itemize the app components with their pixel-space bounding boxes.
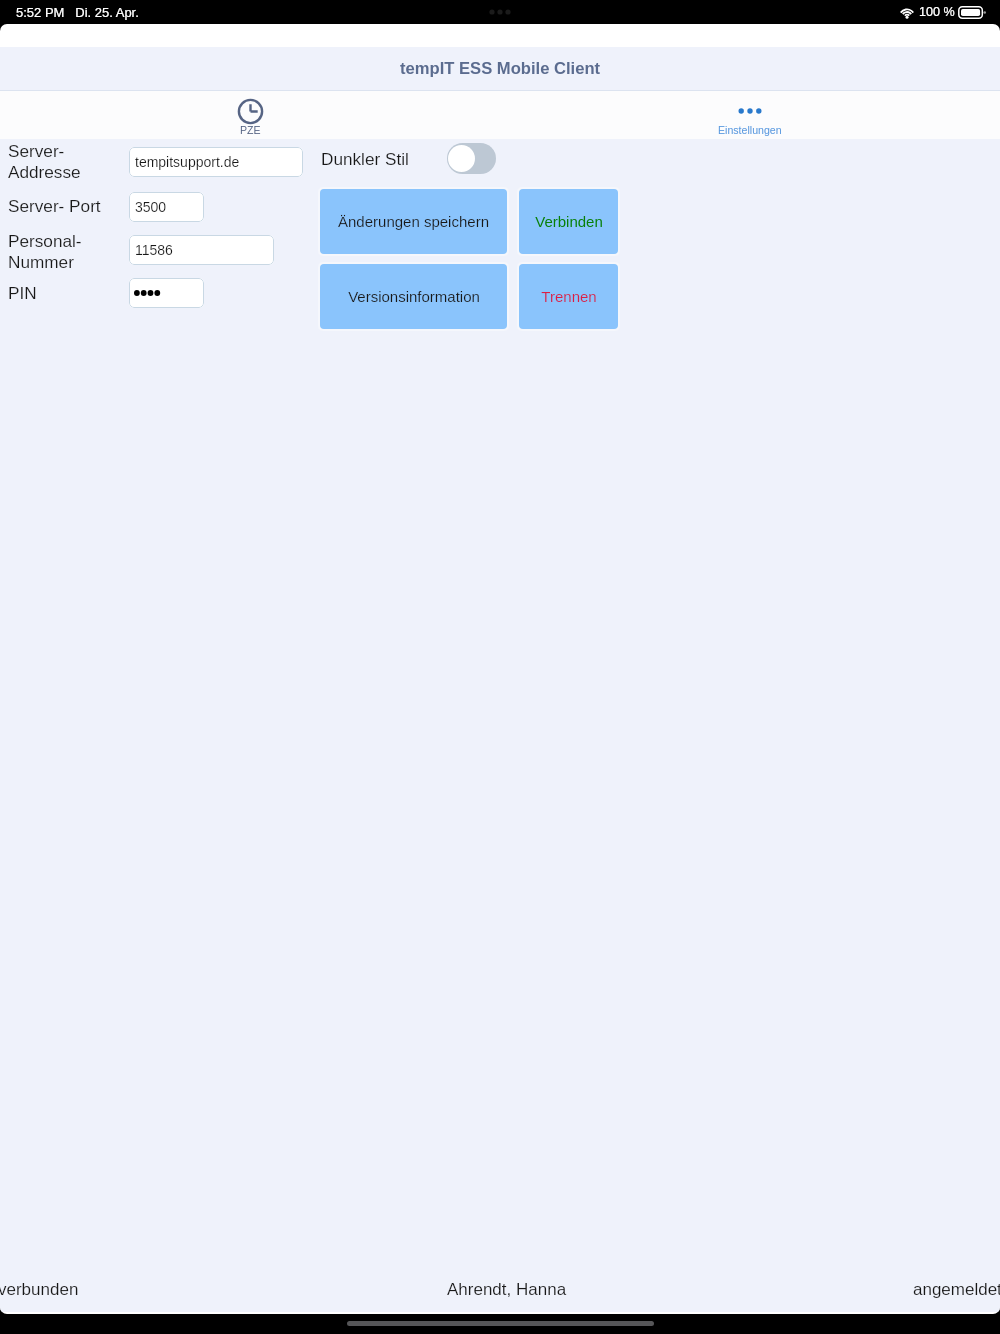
- button[interactable]: Änderungen speichern: [320, 189, 507, 254]
- button[interactable]: Trennen: [519, 264, 618, 329]
- button[interactable]: PZE: [0, 91, 500, 139]
- staticText: Änderungen speichern: [338, 213, 489, 230]
- staticText: Trennen: [541, 288, 597, 305]
- staticText: tempIT ESS Mobile Client: [400, 59, 601, 78]
- staticText: Server- Addresse: [8, 141, 81, 182]
- button[interactable]: tempitsupport.de: [129, 147, 303, 177]
- button[interactable]: Versionsinformation: [320, 264, 507, 329]
- button[interactable]: [129, 278, 204, 308]
- staticText: Verbinden: [535, 213, 603, 230]
- staticText: 11586: [135, 242, 173, 258]
- staticText: PZE: [240, 124, 261, 136]
- staticText: 5:52 PM Di. 25. Apr.: [16, 5, 139, 20]
- staticText: PIN: [8, 283, 37, 302]
- button[interactable]: Einstellungen: [500, 91, 1000, 139]
- staticText: Einstellungen: [718, 124, 782, 136]
- button[interactable]: 3500: [129, 192, 204, 222]
- staticText: tempitsupport.de: [135, 154, 240, 170]
- button[interactable]: Dunkler Stil umschalten: [447, 143, 496, 174]
- button[interactable]: 11586: [129, 235, 274, 265]
- staticText: Versionsinformation: [348, 288, 480, 305]
- staticText: 100 %: [919, 5, 955, 19]
- staticText: Ahrendt, Hanna: [447, 1280, 567, 1299]
- staticText: angemeldet: [913, 1280, 1000, 1299]
- button[interactable]: Verbinden: [519, 189, 618, 254]
- staticText: Server- Port: [8, 196, 101, 215]
- staticText: verbunden: [0, 1280, 79, 1299]
- staticText: 3500: [135, 199, 167, 215]
- staticText: Personal- Nummer: [8, 231, 82, 272]
- staticText: Dunkler Stil: [321, 149, 409, 168]
